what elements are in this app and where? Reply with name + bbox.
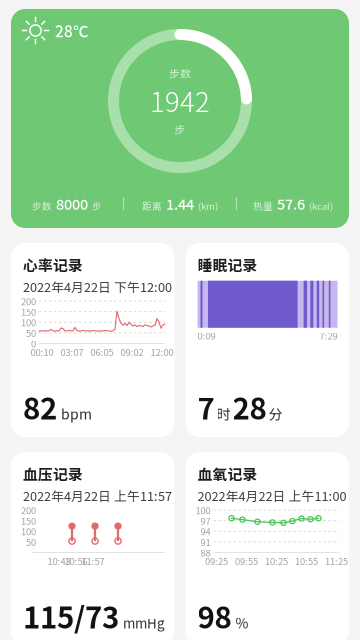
staticText: 步	[174, 121, 185, 137]
staticText: 2022年4月22日 上午11:57	[23, 486, 172, 504]
button[interactable]: 血压记录	[11, 452, 174, 640]
staticText: 时	[216, 403, 230, 424]
staticText: 150	[21, 514, 36, 527]
staticText: 50	[26, 326, 36, 340]
staticText: 心率记录	[23, 254, 83, 275]
button[interactable]: 心率记录	[11, 243, 174, 437]
staticText: %	[235, 612, 248, 633]
staticText: 步数	[32, 199, 52, 213]
staticText: 200	[21, 294, 36, 308]
staticText: (km)	[198, 199, 218, 213]
staticText: 11:25	[325, 554, 348, 568]
staticText: 1.44	[166, 193, 194, 214]
staticText: 10:56	[64, 554, 87, 568]
staticText: 82	[23, 385, 57, 428]
staticText: 2022年4月22日 下午12:00	[23, 277, 172, 295]
staticText: 00:10	[30, 345, 53, 359]
staticText: 09:55	[235, 554, 258, 568]
staticText: 血氧记录	[197, 463, 257, 484]
staticText: 2022年4月22日 上午11:00	[197, 486, 346, 504]
staticText: 28	[232, 385, 266, 428]
staticText: 步数	[169, 65, 191, 81]
staticText: 98	[197, 594, 231, 637]
staticText: 7	[197, 385, 214, 428]
staticText: 12:00	[150, 345, 173, 359]
button[interactable]: 睡眠记录	[185, 243, 349, 437]
staticText: 09:25	[205, 554, 228, 568]
button[interactable]: Weather, 28 degrees Celsius	[11, 9, 88, 43]
staticText: 距离	[142, 199, 162, 213]
staticText: 分	[268, 403, 282, 424]
staticText: 09:02	[120, 345, 143, 359]
staticText: 7:29	[319, 329, 337, 342]
staticText: 0:09	[197, 329, 215, 342]
staticText: 97	[200, 514, 210, 527]
staticText: 10:55	[295, 554, 318, 568]
staticText: 100	[195, 503, 210, 517]
staticText: 1942	[150, 80, 210, 120]
button[interactable]: 血氧记录	[185, 452, 349, 640]
staticText: bpm	[61, 403, 92, 424]
staticText: 06:05	[90, 345, 113, 359]
staticText: 03:07	[60, 345, 83, 359]
staticText: 115/73	[23, 594, 119, 637]
staticText: 50	[26, 535, 36, 549]
staticText: 11:57	[81, 554, 104, 568]
staticText: 100	[21, 315, 36, 329]
staticText: 血压记录	[23, 463, 83, 484]
staticText: 200	[21, 503, 36, 517]
staticText: 10:25	[265, 554, 288, 568]
staticText: 28℃	[55, 19, 88, 42]
staticText: mmHg	[123, 613, 165, 632]
staticText: 91	[200, 535, 210, 549]
staticText: 热量	[253, 199, 273, 213]
staticText: 150	[21, 305, 36, 318]
staticText: 10:43	[47, 554, 70, 568]
staticText: 88	[200, 546, 210, 559]
staticText: 57.6	[277, 193, 305, 214]
staticText: 步	[92, 199, 102, 213]
staticText: 睡眠记录	[197, 254, 257, 275]
staticText: (kcal)	[309, 199, 333, 213]
staticText: 8000	[56, 193, 88, 214]
staticText: 94	[200, 524, 210, 538]
staticText: 0	[31, 337, 36, 350]
staticText: 100	[21, 524, 36, 538]
